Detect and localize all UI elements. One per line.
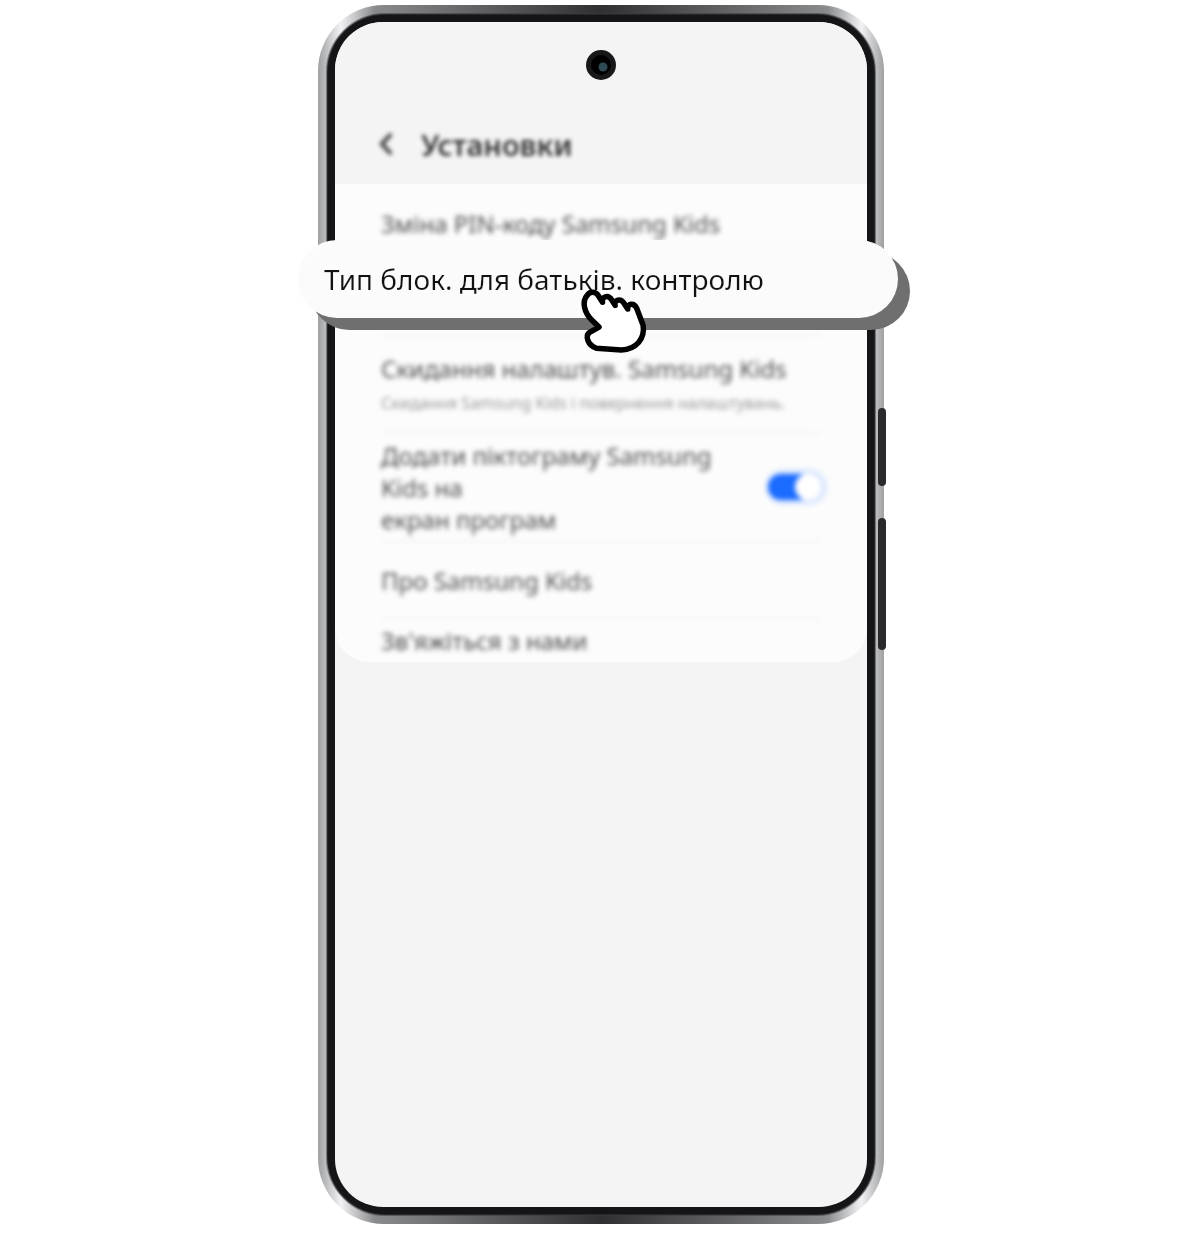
button[interactable]: Зв'яжіться з нами: [335, 619, 867, 662]
staticText: Тип блок. для батьків. контролю: [324, 260, 764, 298]
button[interactable]: Про Samsung Kids: [335, 542, 867, 618]
staticText: Тип блок. для батьків. контролю: [381, 283, 759, 316]
staticText: Установки: [421, 125, 573, 164]
staticText: Про Samsung Kids: [381, 564, 593, 597]
staticText: Додати піктограму Samsung Kids на екран …: [381, 439, 747, 536]
staticText: Скидання налаштув. Samsung Kids: [381, 352, 787, 385]
staticText: Зміна PIN-коду Samsung Kids: [381, 207, 721, 240]
staticText: Зв'яжіться з нами: [381, 624, 588, 657]
button[interactable]: Додати піктограму Samsung Kids на екран …: [335, 433, 867, 541]
button[interactable]: Скидання налаштув. Samsung Kids: [335, 336, 867, 432]
button[interactable]: Назад: [365, 122, 409, 166]
button[interactable]: Зміна PIN-коду Samsung Kids: [335, 184, 867, 262]
staticText: Скидання Samsung Kids і повернення налаш…: [381, 392, 786, 414]
button[interactable]: Тип блок. для батьків. контролю: [298, 240, 898, 318]
button[interactable]: Тип блок. для батьків. контролю: [335, 263, 867, 335]
